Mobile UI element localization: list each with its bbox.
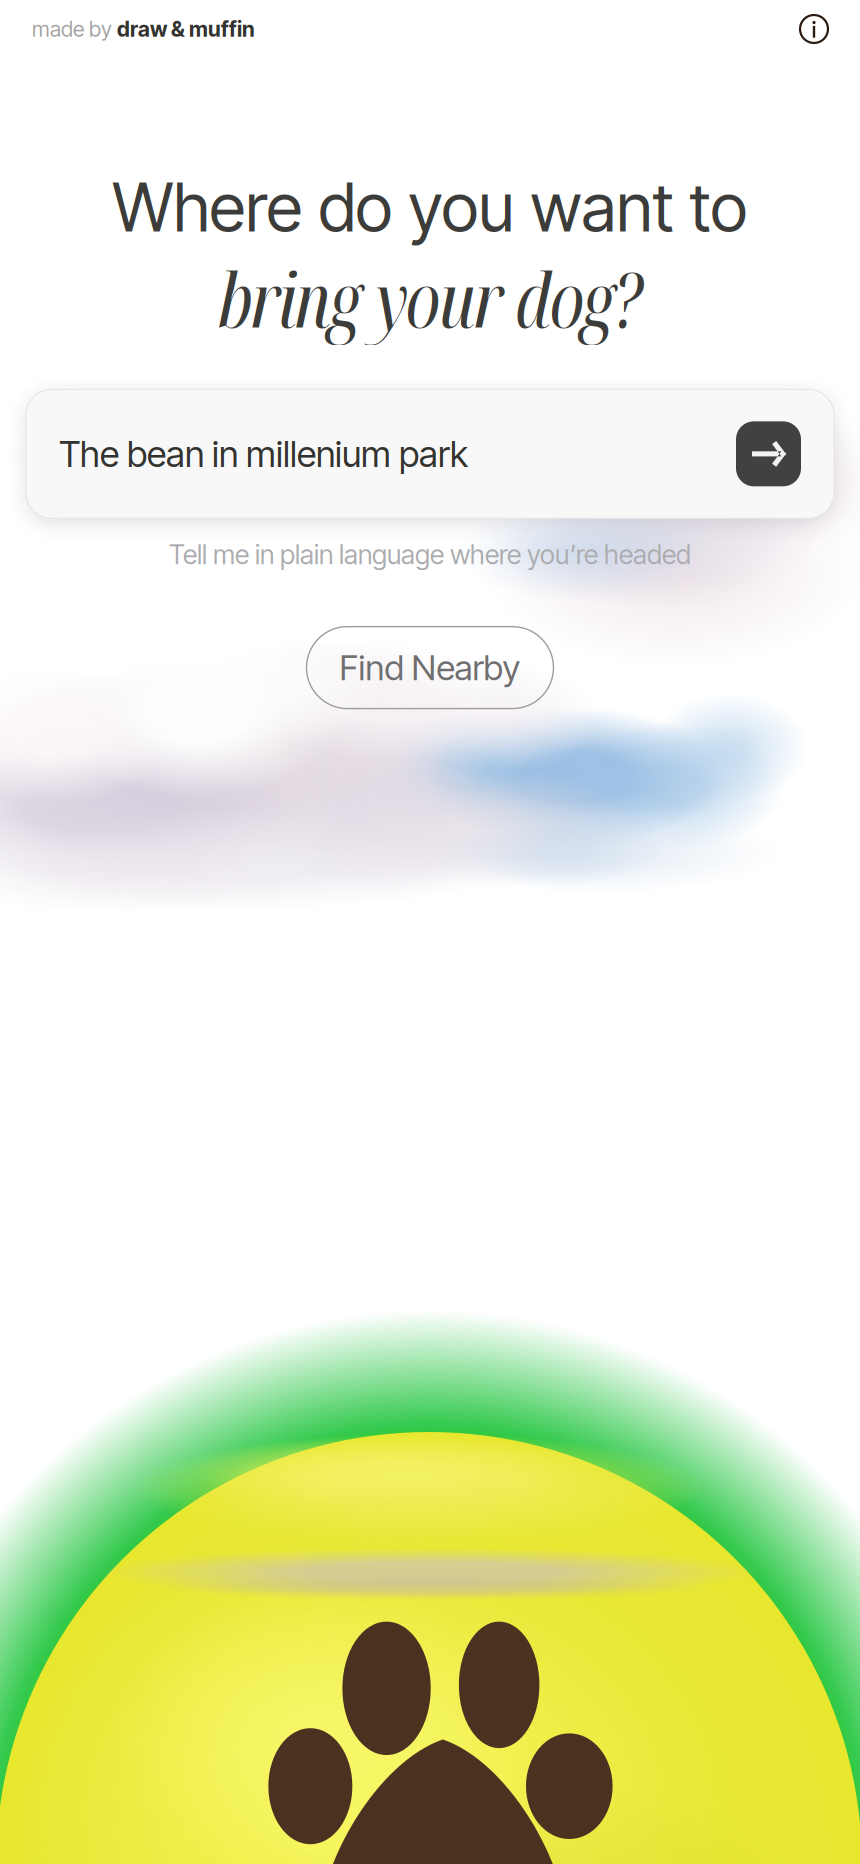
staticText: Tell me in plain language where you’re h… [169, 538, 691, 571]
staticText: Find Nearby [339, 647, 520, 688]
staticText: The bean in millenium park [59, 432, 468, 476]
button[interactable]: Search [736, 421, 801, 486]
staticText: draw & muffin [117, 16, 255, 42]
button[interactable]: Find Nearby [306, 627, 553, 708]
staticText: bring your dog? [217, 248, 642, 349]
button[interactable]: Information [800, 15, 828, 43]
staticText: Where do you want to [112, 167, 747, 248]
staticText: made by [32, 16, 117, 42]
